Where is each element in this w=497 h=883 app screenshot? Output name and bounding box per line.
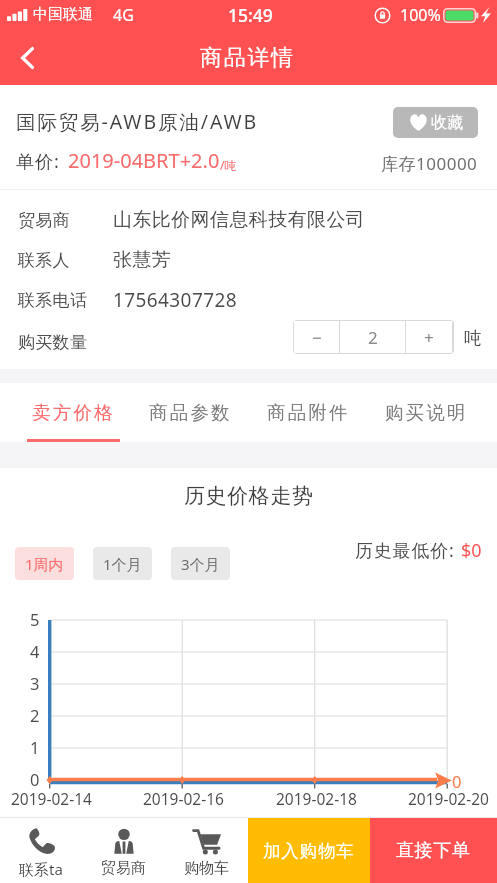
staticText: 中国联通	[33, 5, 93, 24]
staticText: 15:49	[228, 3, 273, 27]
button[interactable]: 购物车	[165, 818, 248, 883]
staticText: 库存100000	[381, 152, 478, 175]
staticText: 联系电话	[18, 290, 88, 311]
staticText: 历史最低价:	[355, 538, 461, 563]
staticText: 吨	[464, 327, 482, 349]
button[interactable]: −	[294, 321, 339, 353]
staticText: 100%	[400, 4, 441, 26]
staticText: 历史价格走势	[184, 483, 314, 509]
staticText: 4G	[113, 4, 134, 26]
staticText: 2019-02-18	[276, 788, 357, 809]
staticText: 5	[30, 608, 40, 630]
button[interactable]: 收藏	[393, 107, 478, 138]
button[interactable]: 1周内	[15, 547, 74, 580]
staticText: /吨	[220, 157, 237, 173]
staticText: 购买数量	[18, 332, 88, 353]
staticText: 购买说明	[385, 401, 468, 424]
staticText: 直接下单	[396, 839, 471, 862]
staticText: 联系人	[18, 250, 70, 271]
staticText: 0	[30, 768, 40, 790]
staticText: 3	[30, 672, 40, 694]
staticText: 商品参数	[149, 401, 232, 424]
button[interactable]: 购买说明	[367, 383, 485, 442]
button[interactable]: 直接下单	[370, 818, 497, 883]
button[interactable]: 2	[340, 321, 405, 353]
staticText: 贸易商	[18, 210, 70, 231]
staticText: 加入购物车	[263, 840, 355, 862]
staticText: 4	[30, 640, 40, 662]
staticText: 购物车	[184, 859, 229, 878]
staticText: 单价:	[16, 149, 60, 174]
button[interactable]: 联系ta	[0, 818, 82, 883]
staticText: 联系ta	[19, 859, 63, 879]
staticText: $0	[461, 538, 482, 563]
staticText: 国际贸易-AWB原油/AWB	[16, 108, 259, 135]
staticText: 贸易商	[101, 859, 146, 878]
button[interactable]: 1个月	[93, 547, 152, 580]
button[interactable]: 3个月	[171, 547, 230, 580]
button[interactable]: 贸易商	[82, 818, 165, 883]
button[interactable]: 卖方价格	[15, 383, 132, 442]
staticText: −	[312, 326, 322, 349]
staticText: +	[424, 326, 434, 349]
staticText: 1	[30, 736, 40, 758]
staticText: 2	[368, 326, 378, 349]
staticText: 商品附件	[267, 401, 350, 424]
button[interactable]: +	[406, 321, 452, 353]
button[interactable]: 商品附件	[249, 383, 367, 442]
staticText: 商品详情	[200, 44, 295, 72]
staticText: 1周内	[25, 554, 64, 574]
staticText: 卖方价格	[32, 401, 115, 424]
staticText: 2019-02-16	[143, 788, 224, 809]
staticText: 2	[30, 704, 40, 726]
staticText: 1个月	[103, 554, 142, 574]
button[interactable]: 商品参数	[132, 383, 249, 442]
staticText: 张慧芳	[113, 248, 172, 272]
staticText: 17564307728	[113, 287, 237, 313]
staticText: 2019-02-20	[408, 788, 489, 809]
button[interactable]: Back	[0, 30, 54, 85]
staticText: 山东比价网信息科技有限公司	[113, 208, 366, 232]
staticText: 2019-04BRT+2.0	[68, 147, 220, 174]
staticText: 收藏	[431, 113, 463, 133]
staticText: 2019-02-14	[11, 788, 92, 809]
staticText: 3个月	[181, 554, 220, 574]
button[interactable]: 加入购物车	[248, 818, 370, 883]
staticText: 0	[452, 770, 462, 792]
